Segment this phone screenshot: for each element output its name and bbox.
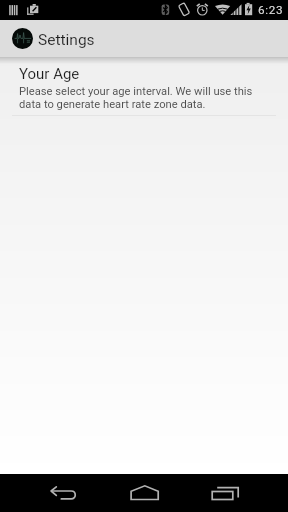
staticText: Your Age [19, 65, 80, 83]
staticText: Please select your age interval. We will… [19, 85, 257, 111]
staticText: 6:23 [258, 3, 284, 17]
staticText: Settings [38, 31, 95, 49]
button[interactable]: Back [42, 474, 86, 512]
button[interactable]: App logo [12, 28, 33, 49]
button[interactable]: Recent apps [203, 474, 247, 512]
button[interactable]: Home [122, 474, 166, 512]
